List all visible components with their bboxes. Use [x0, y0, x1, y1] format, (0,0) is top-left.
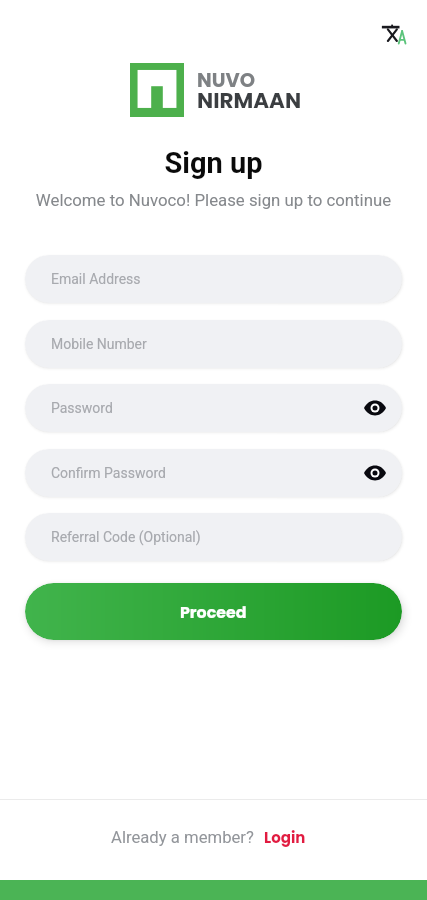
staticText: Login	[264, 827, 306, 848]
staticText: Proceed	[180, 601, 247, 623]
staticText: Password	[51, 400, 113, 416]
staticText: Confirm Password	[51, 465, 166, 481]
button[interactable]: Referral Code (Optional)	[25, 513, 402, 561]
staticText: Referral Code (Optional)	[51, 529, 201, 545]
button[interactable]: Email Address	[25, 255, 402, 303]
button[interactable]: Translate	[381, 21, 406, 46]
button[interactable]: Proceed	[25, 583, 402, 640]
button[interactable]: Show password	[362, 395, 388, 421]
staticText: NIRMAAN	[197, 85, 302, 115]
button[interactable]: Login	[264, 827, 306, 848]
staticText: Welcome to Nuvoco! Please sign up to con…	[0, 190, 427, 210]
button[interactable]: Confirm Password	[25, 449, 402, 497]
button[interactable]: Show password	[362, 460, 388, 486]
staticText: Sign up	[0, 146, 427, 180]
button[interactable]: Password	[25, 384, 402, 432]
button[interactable]: Mobile Number	[25, 320, 402, 368]
staticText: Email Address	[51, 271, 141, 287]
staticText: NUVO	[197, 67, 255, 94]
staticText: Already a member?	[111, 828, 254, 848]
staticText: Mobile Number	[51, 336, 147, 352]
